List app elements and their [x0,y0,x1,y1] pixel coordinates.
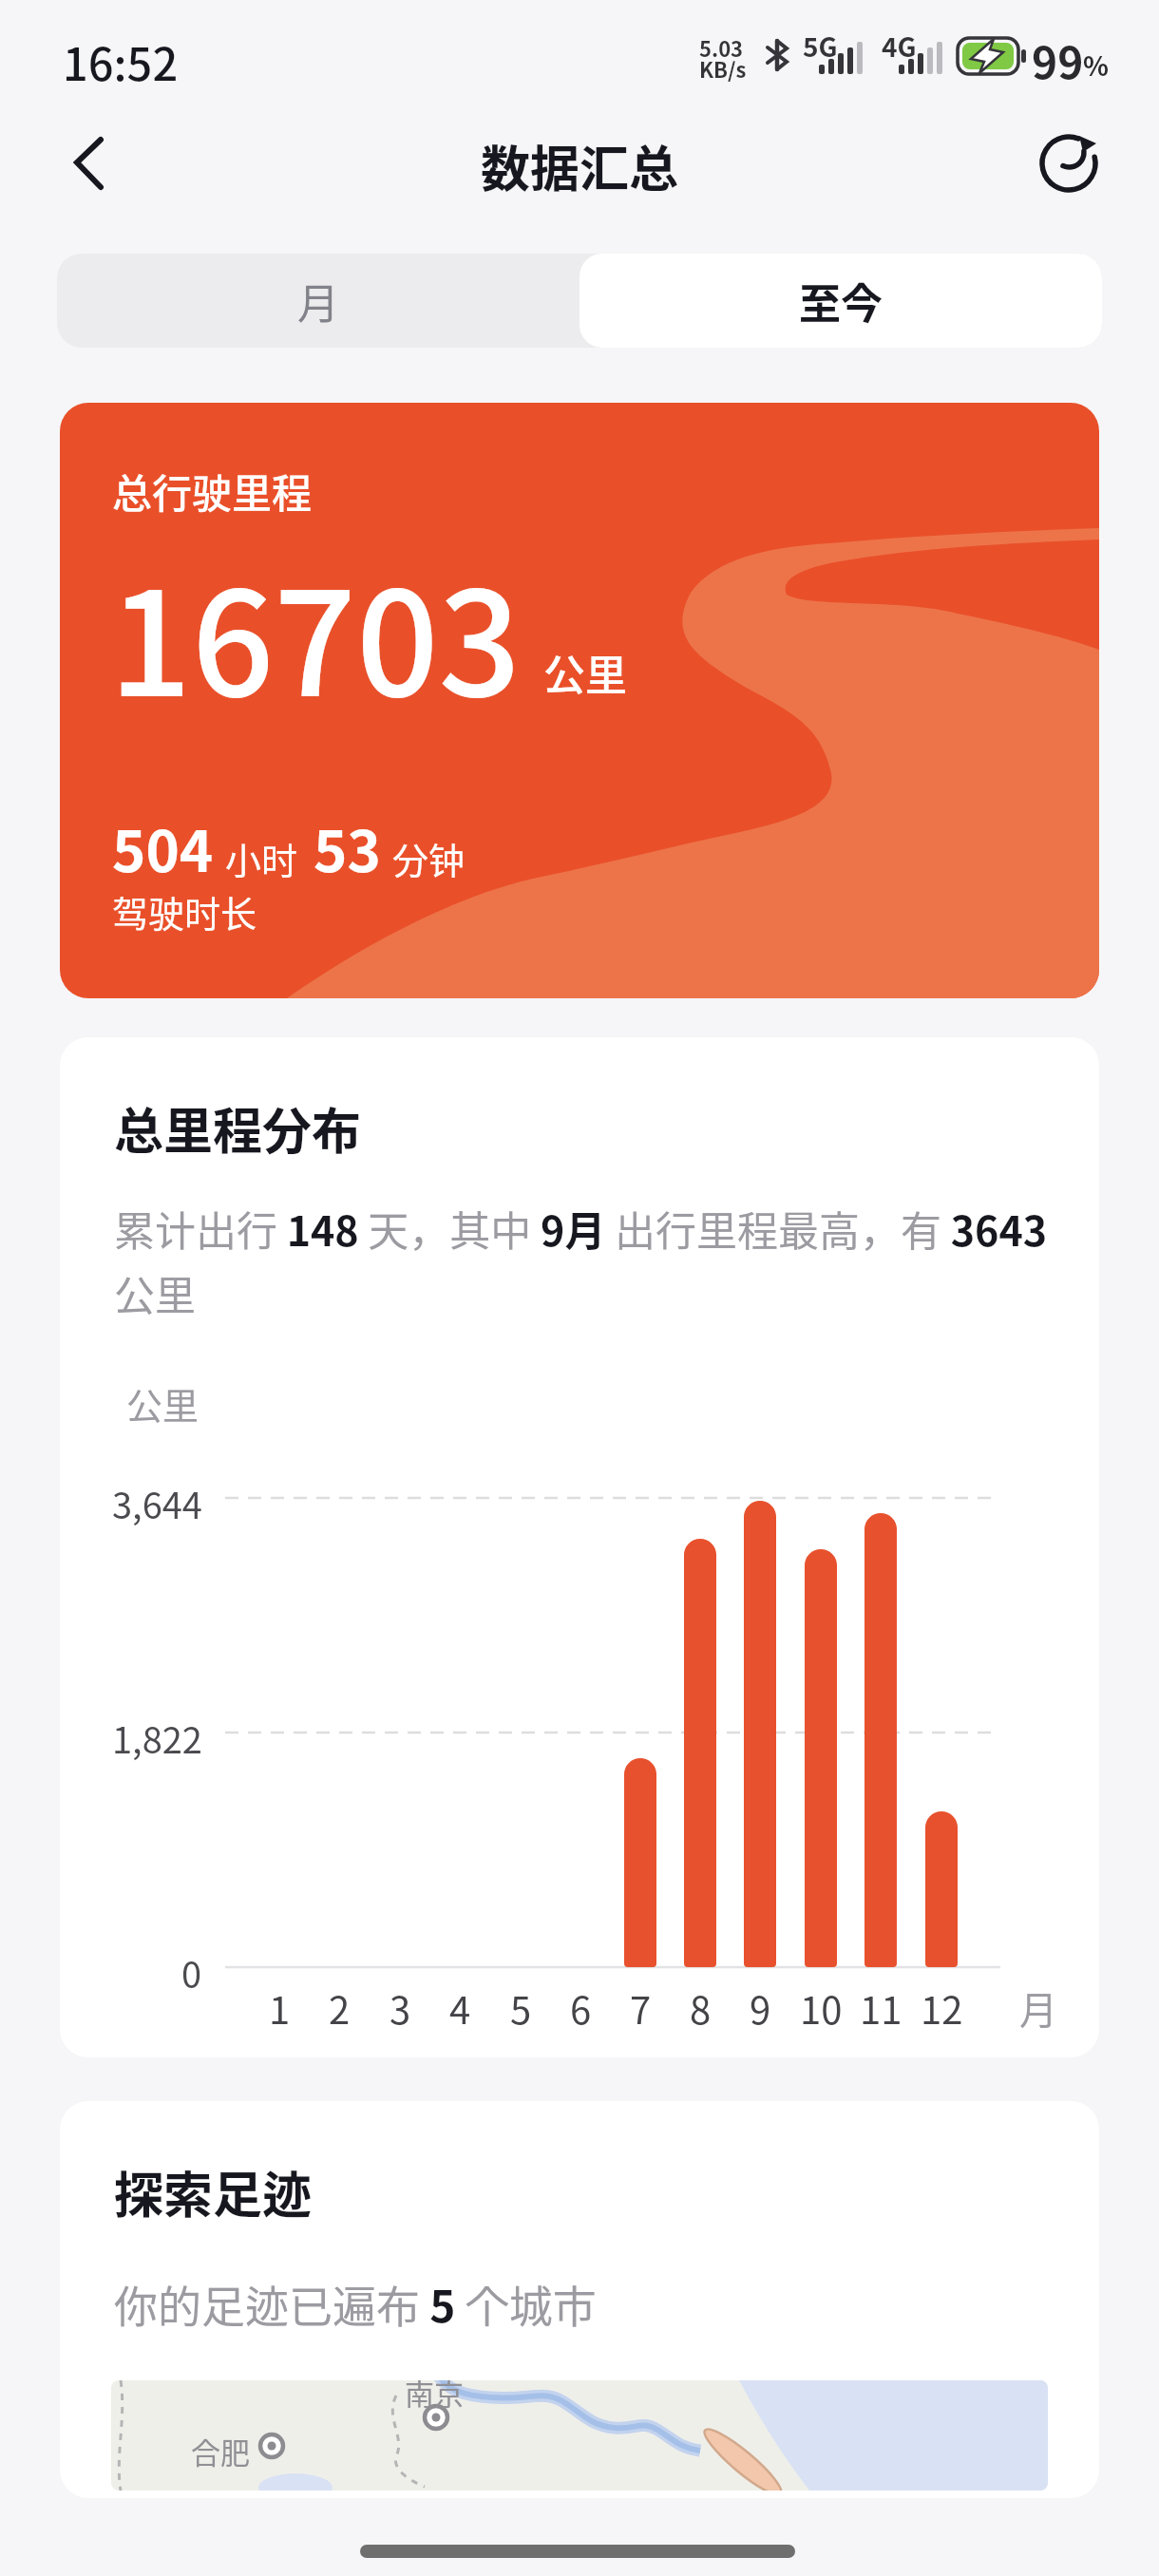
staticText: 至今 [799,271,883,331]
button[interactable]: 月 [57,254,579,348]
staticText: 10 [800,1980,843,2036]
button[interactable]: 南京 [111,2380,1048,2491]
staticText: 月 [297,271,339,331]
button[interactable] [1031,125,1107,201]
staticText: % [1083,46,1109,85]
staticText: 5G [803,27,838,66]
staticText: 3,644 [112,1477,202,1529]
staticText: 6 [570,1980,592,2036]
staticText: 9 [750,1980,771,2036]
staticText: 累计出行 148 天，其中 9月 出行里程最高，有 3643 [114,1199,1048,1258]
staticText: 12 [921,1980,963,2036]
staticText: 驾驶时长 [112,885,257,938]
staticText: 公里 [126,1377,199,1430]
staticText: 504 [112,805,214,888]
staticText: 53 [313,805,381,888]
staticText: 99 [1032,28,1084,92]
staticText: 7 [630,1980,652,2036]
staticText: 总里程分布 [114,1092,362,1164]
staticText: 8 [690,1980,712,2036]
button[interactable]: 至今 [579,254,1102,348]
staticText: 1,822 [112,1712,202,1764]
button[interactable] [52,123,128,199]
staticText: 公里 [114,1263,196,1322]
staticText: 0 [181,1946,202,1998]
staticText: 小时 [225,832,298,884]
staticText: 5.03 [699,32,744,63]
staticText: 你的足迹已遍布 5 个城市 [114,2272,597,2336]
staticText: 4 [449,1980,471,2036]
staticText: 5 [510,1980,532,2036]
staticText: 总行驶里程 [112,462,313,520]
staticText: 16703 [109,529,522,738]
staticText: KB/s [699,53,747,84]
staticText: 4G [882,27,917,66]
staticText: 2 [329,1980,351,2036]
staticText: 南京 [405,2380,464,2414]
staticText: 11 [860,1980,902,2036]
staticText: 16:52 [63,28,179,93]
staticText: 数据汇总 [481,130,679,201]
staticText: 分钟 [392,832,465,884]
staticText: 3 [389,1980,411,2036]
staticText: 1 [269,1980,291,2036]
staticText: 公里 [543,642,627,703]
staticText: 探索足迹 [114,2156,313,2227]
staticText: 月 [1019,1980,1057,2036]
staticText: 合肥 [191,2430,250,2472]
